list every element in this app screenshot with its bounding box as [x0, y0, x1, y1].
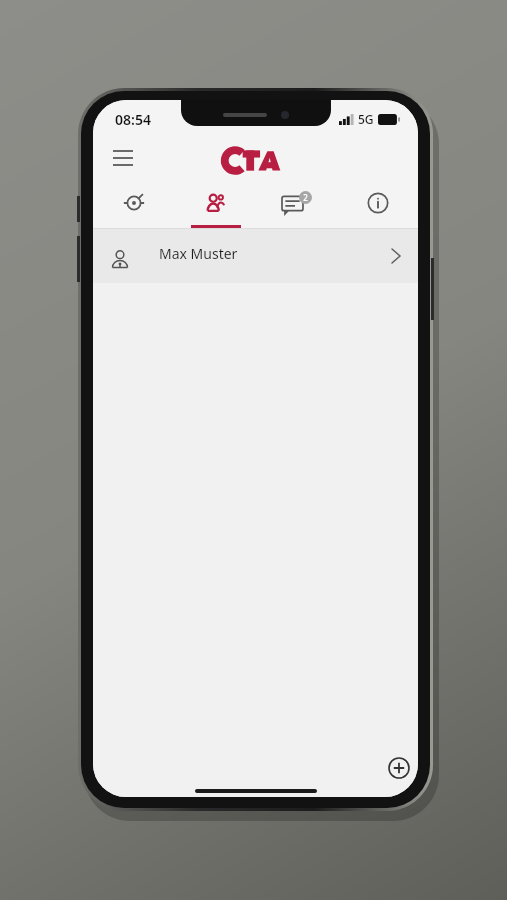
staticText: 5G	[358, 111, 374, 127]
button[interactable]: Location	[93, 182, 175, 228]
staticText: 2	[303, 192, 308, 203]
button[interactable]: Contacts	[175, 182, 256, 228]
button[interactable]: Info	[337, 182, 418, 228]
staticText: 08:54	[115, 110, 151, 129]
button[interactable]: Add	[388, 757, 410, 779]
staticText: Max Muster	[159, 244, 238, 263]
button[interactable]: Menu	[105, 140, 141, 176]
button[interactable]: Messages	[256, 182, 337, 228]
button[interactable]: Max Muster	[93, 229, 418, 283]
